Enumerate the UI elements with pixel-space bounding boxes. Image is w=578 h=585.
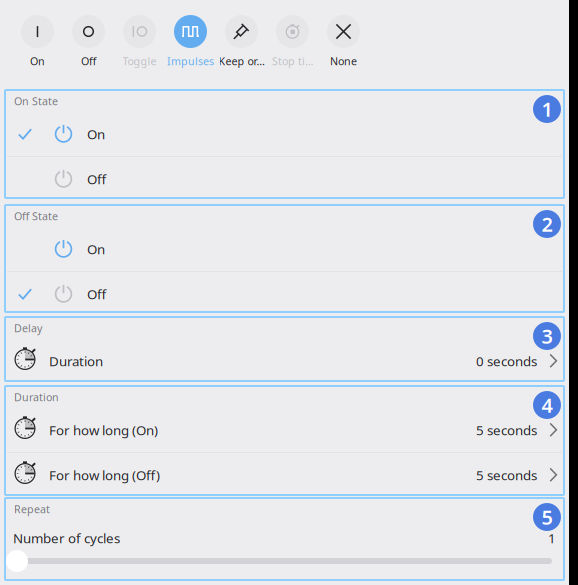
staticText: Duration: [49, 352, 103, 370]
button[interactable]: Off: [63, 0, 114, 84]
staticText: Stop ti…: [272, 54, 313, 68]
staticText: 5 seconds: [476, 421, 537, 439]
staticText: Delay: [14, 321, 42, 335]
button[interactable]: Toggle: [114, 0, 165, 84]
staticText: 1: [541, 96, 552, 122]
button[interactable]: Stop ti…: [267, 0, 318, 84]
button[interactable]: On: [5, 112, 564, 156]
staticText: On: [30, 54, 45, 68]
staticText: 4: [541, 392, 552, 418]
staticText: On State: [14, 94, 58, 108]
staticText: Keep or…: [218, 54, 264, 68]
staticText: Toggle: [122, 54, 156, 68]
staticText: Number of cycles: [13, 529, 120, 547]
staticText: Off State: [14, 209, 58, 223]
button[interactable]: On: [12, 0, 63, 84]
staticText: On: [87, 125, 105, 143]
staticText: On: [87, 240, 105, 258]
staticText: 5: [541, 504, 552, 530]
button[interactable]: On: [5, 227, 564, 271]
staticText: For how long (On): [49, 421, 158, 439]
staticText: Repeat: [14, 502, 50, 516]
staticText: Off: [81, 54, 96, 68]
button[interactable]: For how long (On): [5, 408, 564, 452]
staticText: For how long (Off): [49, 466, 160, 484]
button[interactable]: Keep or…: [216, 0, 267, 84]
button[interactable]: For how long (Off): [5, 453, 564, 497]
staticText: 3: [541, 323, 552, 349]
button[interactable]: Duration: [5, 339, 564, 383]
button[interactable]: None: [318, 0, 369, 84]
staticText: Impulses: [167, 54, 214, 68]
staticText: 0 seconds: [476, 352, 537, 370]
button[interactable]: Impulses: [165, 0, 216, 84]
staticText: 5 seconds: [476, 466, 537, 484]
staticText: None: [330, 54, 357, 68]
staticText: Duration: [14, 390, 59, 404]
staticText: Off: [87, 170, 106, 188]
staticText: 1: [548, 529, 556, 547]
staticText: 2: [541, 211, 552, 237]
staticText: Off: [87, 285, 106, 303]
button[interactable]: Off: [5, 272, 564, 316]
button[interactable]: Off: [5, 157, 564, 201]
